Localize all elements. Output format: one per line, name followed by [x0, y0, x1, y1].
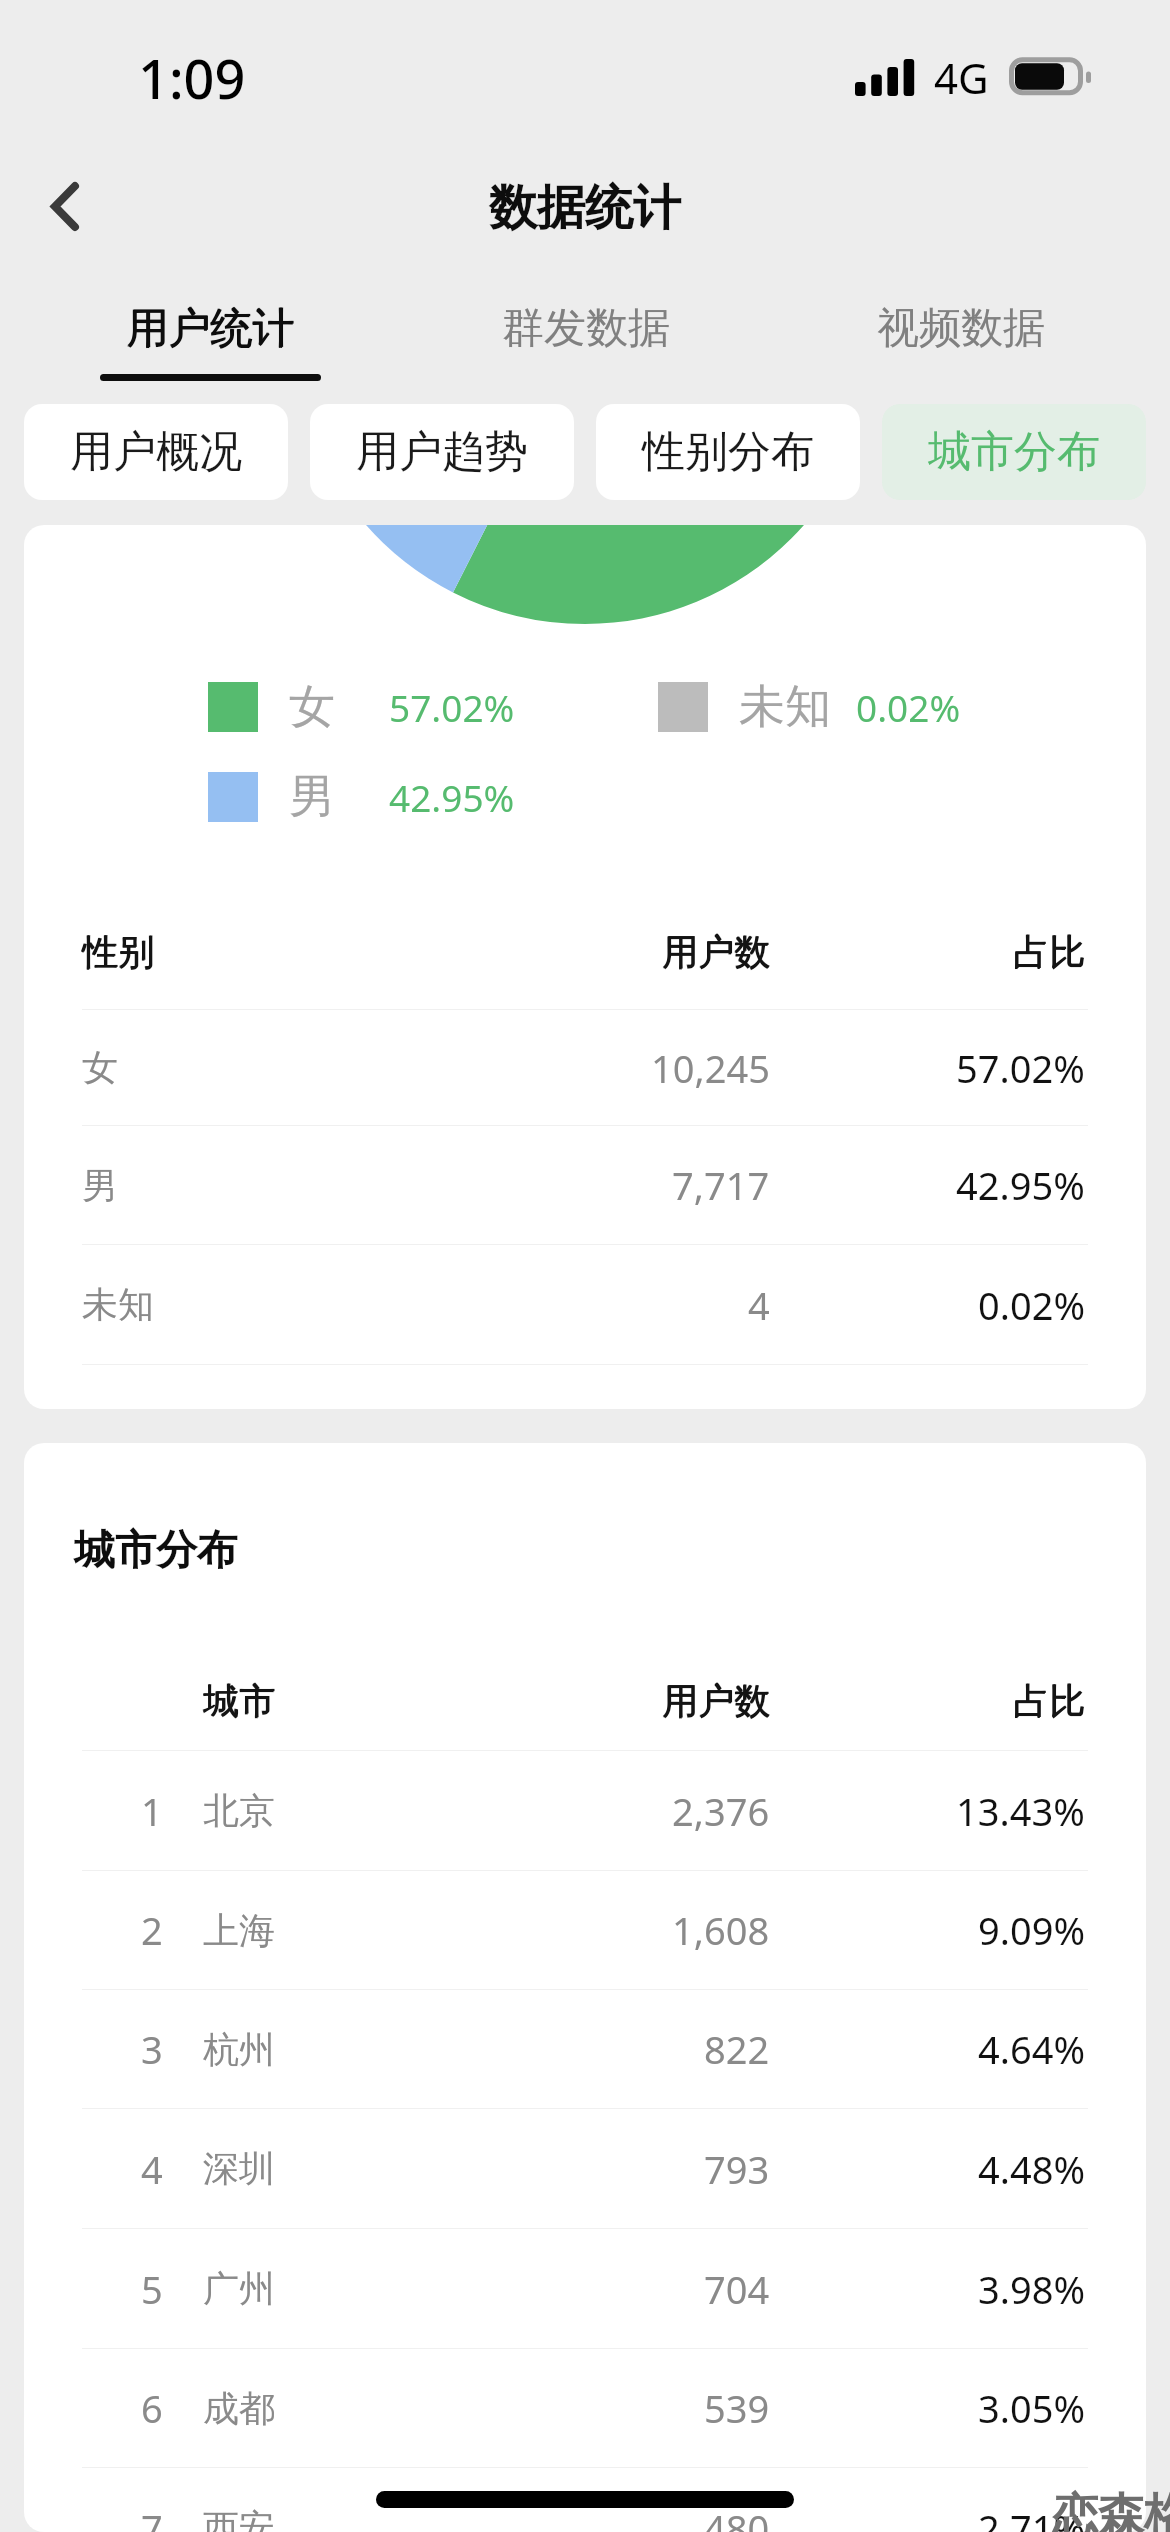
- button[interactable]: 用户概况: [24, 404, 288, 500]
- button[interactable]: 3: [24, 1990, 1146, 2108]
- staticText: 男: [289, 768, 335, 826]
- staticText: 用户数: [663, 1678, 771, 1723]
- staticText: 5: [141, 2263, 163, 2315]
- staticText: 上海: [203, 1908, 275, 1953]
- staticText: 7,717: [672, 1159, 770, 1211]
- staticText: 占比: [1014, 1678, 1086, 1723]
- staticText: 用户统计: [126, 303, 294, 356]
- staticText: 占比: [1013, 929, 1085, 974]
- staticText: 4G: [934, 49, 989, 106]
- staticText: 广州: [203, 2266, 275, 2311]
- staticText: 4.64%: [978, 2023, 1085, 2075]
- staticText: 4.48%: [978, 2143, 1085, 2195]
- staticText: 性别: [82, 929, 154, 974]
- staticText: 用户数: [662, 1678, 770, 1723]
- staticText: 城市: [203, 1678, 275, 1723]
- staticText: 13.43%: [956, 1785, 1085, 1837]
- staticText: 2: [141, 1904, 163, 1956]
- staticText: 539: [704, 2382, 770, 2434]
- button[interactable]: Back: [14, 155, 116, 257]
- staticText: 女: [82, 1045, 118, 1090]
- staticText: 793: [704, 2143, 770, 2195]
- staticText: 数据统计: [489, 178, 681, 238]
- staticText: 3.98%: [978, 2263, 1085, 2315]
- button[interactable]: 群发数据: [398, 265, 773, 395]
- staticText: 群发数据: [502, 302, 670, 355]
- staticText: 用户数: [662, 929, 770, 974]
- staticText: 北京: [203, 1788, 275, 1833]
- staticText: 用户统计: [126, 302, 294, 355]
- staticText: 7: [141, 2502, 163, 2532]
- button[interactable]: 1: [24, 1751, 1146, 1870]
- staticText: 城市分布: [74, 1525, 238, 1577]
- staticText: 占比: [1013, 1678, 1085, 1723]
- button[interactable]: 性别分布: [596, 404, 860, 500]
- staticText: 704: [704, 2263, 770, 2315]
- staticText: 性别: [82, 930, 154, 975]
- button[interactable]: 2: [24, 1871, 1146, 1989]
- staticText: 2.71%: [978, 2502, 1085, 2532]
- staticText: 用户数: [662, 1679, 770, 1724]
- staticText: 822: [704, 2023, 770, 2075]
- staticText: 0.02%: [856, 682, 961, 732]
- staticText: 男: [82, 1163, 118, 1208]
- button[interactable]: 7: [24, 2468, 1146, 2532]
- staticText: 用户统计: [127, 302, 295, 355]
- staticText: 视频数据: [877, 302, 1045, 355]
- staticText: 用户数: [662, 930, 770, 975]
- staticText: 城市分布: [928, 425, 1100, 479]
- button[interactable]: 城市分布: [882, 404, 1146, 500]
- staticText: 57.02%: [956, 1042, 1085, 1094]
- staticText: 性别分布: [642, 425, 814, 479]
- staticText: 1: [141, 1785, 163, 1837]
- staticText: 3: [141, 2023, 163, 2075]
- staticText: 性别: [83, 929, 155, 974]
- staticText: 用户趋势: [356, 425, 528, 479]
- staticText: 1:09: [138, 41, 246, 115]
- button[interactable]: 5: [24, 2229, 1146, 2348]
- staticText: 用户概况: [70, 425, 242, 479]
- staticText: 用户数: [663, 929, 771, 974]
- staticText: 西安: [203, 2505, 275, 2532]
- staticText: 1,608: [672, 1904, 770, 1956]
- staticText: 未知: [82, 1282, 154, 1327]
- button[interactable]: 视频数据: [773, 265, 1148, 395]
- staticText: 未知: [739, 678, 831, 736]
- staticText: 4: [748, 1279, 770, 1331]
- staticText: 占比: [1013, 1679, 1085, 1724]
- staticText: 成都: [203, 2386, 275, 2431]
- staticText: 10,245: [651, 1042, 770, 1094]
- staticText: 女: [289, 678, 335, 736]
- staticText: 深圳: [203, 2146, 275, 2191]
- staticText: 0.02%: [978, 1279, 1085, 1331]
- button[interactable]: 用户趋势: [310, 404, 574, 500]
- button[interactable]: 4: [24, 2109, 1146, 2228]
- staticText: 480: [704, 2502, 770, 2532]
- staticText: 6: [141, 2382, 163, 2434]
- staticText: 42.95%: [956, 1159, 1085, 1211]
- button[interactable]: 6: [24, 2349, 1146, 2467]
- staticText: 恋森格: [1052, 2487, 1170, 2532]
- staticText: 占比: [1013, 930, 1085, 975]
- staticText: 城市: [204, 1678, 276, 1723]
- staticText: 杭州: [203, 2027, 275, 2072]
- button[interactable]: 女: [24, 1010, 1146, 1125]
- button[interactable]: 用户统计: [22, 265, 398, 395]
- staticText: 4: [141, 2143, 163, 2195]
- staticText: 9.09%: [978, 1904, 1085, 1956]
- staticText: 42.95%: [389, 772, 515, 822]
- staticText: 城市: [203, 1679, 275, 1724]
- staticText: 57.02%: [389, 682, 515, 732]
- staticText: 2,376: [672, 1785, 770, 1837]
- button[interactable]: 男: [24, 1126, 1146, 1244]
- staticText: 占比: [1014, 929, 1086, 974]
- button[interactable]: 未知: [24, 1245, 1146, 1364]
- staticText: 3.05%: [978, 2382, 1085, 2434]
